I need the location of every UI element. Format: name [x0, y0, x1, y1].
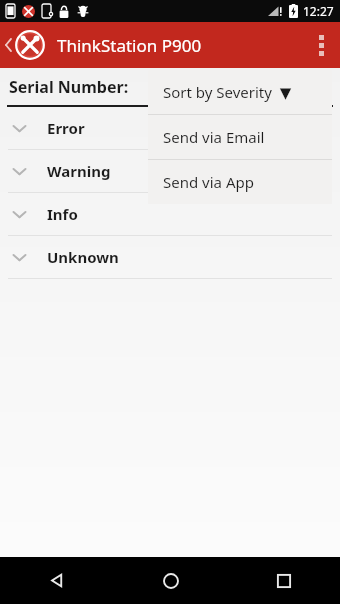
button[interactable]: Send via App [148, 160, 332, 204]
button[interactable]: Recent apps [227, 557, 340, 604]
button[interactable]: Home [114, 557, 227, 604]
button[interactable]: Navigate up [2, 22, 47, 68]
button[interactable]: More options [302, 22, 340, 68]
staticText: 12:27 [303, 3, 334, 19]
staticText: Unknown [47, 247, 119, 267]
staticText: Serial Number: [9, 76, 129, 98]
button[interactable]: Send via Email [148, 115, 332, 159]
staticText: Sort by Severity ▼ [163, 82, 292, 102]
button[interactable]: Error [0, 107, 340, 149]
button[interactable]: Unknown [0, 236, 340, 278]
button[interactable]: Info [0, 193, 340, 235]
staticText: ThinkStation P900 [57, 34, 202, 57]
staticText: Error [47, 118, 85, 138]
staticText: Send via Email [163, 127, 265, 147]
staticText: Info [47, 204, 78, 224]
staticText: Send via App [163, 172, 254, 192]
button[interactable]: Serial Number: [0, 68, 340, 105]
button[interactable]: Back [0, 557, 114, 604]
button[interactable]: Sort by Severity ▼ [148, 70, 332, 114]
staticText: Warning [47, 161, 111, 181]
button[interactable]: Warning [0, 150, 340, 192]
